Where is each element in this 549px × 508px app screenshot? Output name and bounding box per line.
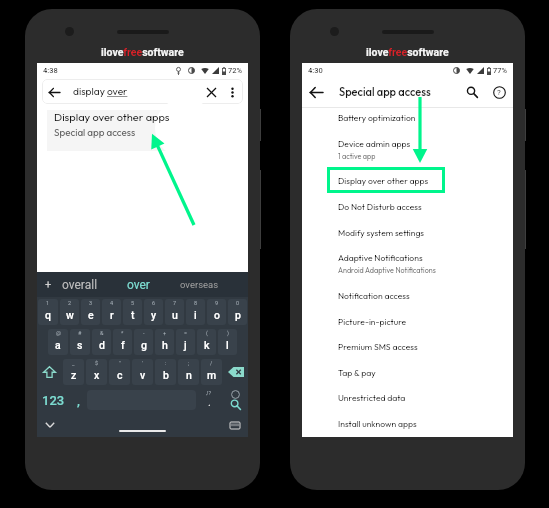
staticText: o [214, 309, 220, 321]
button[interactable]: ,!? [196, 387, 222, 413]
button[interactable]: More options [222, 82, 242, 102]
staticText: + [45, 278, 52, 291]
staticText: 123 [42, 393, 65, 408]
button[interactable]: Picture-in-picture [302, 308, 513, 334]
button[interactable]: ' [132, 359, 153, 385]
button[interactable]: Clear [201, 82, 221, 102]
staticText: Special app access [54, 126, 136, 138]
staticText: Modify system settings [338, 227, 425, 238]
button[interactable]: 0 [228, 299, 247, 325]
button[interactable]: Back [42, 80, 66, 104]
staticText: over [127, 278, 150, 292]
staticText: x [94, 369, 100, 381]
button[interactable]: Premium SMS access [302, 333, 513, 359]
staticText: ; [188, 360, 190, 366]
button[interactable]: 8 [186, 299, 205, 325]
button[interactable]: Device admin apps [302, 130, 513, 156]
staticText: $ [95, 360, 99, 366]
staticText: e [88, 309, 94, 321]
button[interactable]: 2 [60, 299, 79, 325]
staticText: overseas [180, 279, 219, 290]
button[interactable]: 6 [144, 299, 163, 325]
staticText: Notification access [338, 290, 410, 301]
button[interactable]: ; [178, 359, 199, 385]
button[interactable]: Battery optimization [302, 104, 513, 130]
button[interactable]: 3 [81, 299, 100, 325]
staticText: f [121, 339, 125, 351]
staticText: = [184, 330, 188, 336]
staticText: t [131, 309, 135, 321]
button[interactable]: : [155, 359, 176, 385]
staticText: 72% [228, 66, 243, 75]
button[interactable]: Tap & pay [302, 359, 513, 385]
button[interactable]: Install unknown apps [302, 410, 513, 436]
button[interactable]: + [155, 329, 174, 355]
staticText: 9 [215, 300, 219, 306]
staticText: ilovefreesoftware [101, 46, 184, 58]
button[interactable]: Adaptive Notifications [302, 244, 513, 270]
button[interactable]: 1 [38, 299, 58, 325]
staticText: r [110, 309, 114, 321]
staticText: j [184, 339, 187, 351]
button[interactable]: Help [485, 77, 513, 107]
staticText: i [194, 309, 197, 321]
button[interactable]: 7 [165, 299, 184, 325]
staticText: . [208, 396, 211, 409]
staticText: k [204, 339, 210, 351]
button[interactable]: _ [63, 359, 84, 385]
button[interactable]: / [201, 359, 222, 385]
button[interactable]: 5 [123, 299, 142, 325]
staticText: " [119, 360, 121, 366]
button[interactable]: Change keyboard [226, 416, 244, 434]
button[interactable]: @ [48, 329, 68, 355]
staticText: 1 [46, 300, 50, 306]
staticText: w [66, 309, 74, 321]
staticText: 4:38 [43, 66, 58, 75]
staticText: # [78, 330, 82, 336]
button[interactable]: Unrestricted data [302, 384, 513, 410]
button[interactable]: Shift [37, 357, 62, 387]
staticText: ? [497, 88, 501, 97]
button[interactable]: * [113, 329, 132, 355]
button[interactable]: $ [86, 359, 107, 385]
staticText: c [117, 369, 123, 381]
staticText: overall [62, 278, 98, 292]
staticText: z [71, 369, 77, 381]
staticText: Display over other apps [338, 175, 429, 186]
button[interactable]: Display over other apps [37, 104, 248, 150]
button[interactable]: ( [197, 329, 216, 355]
staticText: q [45, 309, 51, 321]
button[interactable]: Display over other apps [302, 167, 513, 193]
staticText: ) [227, 330, 229, 336]
staticText: u [172, 309, 178, 321]
staticText: , [77, 393, 80, 408]
button[interactable]: , [69, 387, 87, 413]
staticText: Tap & pay [338, 367, 376, 378]
button[interactable]: 9 [207, 299, 226, 325]
staticText: @ [56, 330, 61, 336]
button[interactable]: Hide keyboard [41, 416, 59, 434]
button[interactable]: 4 [102, 299, 121, 325]
button[interactable]: # [70, 329, 90, 355]
staticText: ,!? [206, 390, 212, 396]
staticText: l [226, 339, 229, 351]
button[interactable]: & [92, 329, 111, 355]
button[interactable]: - [134, 329, 153, 355]
button[interactable]: 123 [37, 387, 69, 413]
button[interactable]: Search [459, 77, 485, 107]
staticText: 8 [194, 300, 198, 306]
staticText: v [140, 369, 146, 381]
staticText: 77% [493, 66, 508, 75]
button[interactable]: Back [302, 77, 330, 107]
button[interactable]: " [109, 359, 130, 385]
button[interactable]: ) [218, 329, 237, 355]
button[interactable]: = [176, 329, 195, 355]
button[interactable]: Back [42, 79, 243, 104]
button[interactable]: Do Not Disturb access [302, 193, 513, 219]
button[interactable]: Backspace [223, 357, 248, 387]
button[interactable]: Notification access [302, 282, 513, 308]
button[interactable]: Modify system settings [302, 219, 513, 245]
button[interactable]: Search [222, 387, 248, 413]
staticText: display over [73, 85, 128, 98]
